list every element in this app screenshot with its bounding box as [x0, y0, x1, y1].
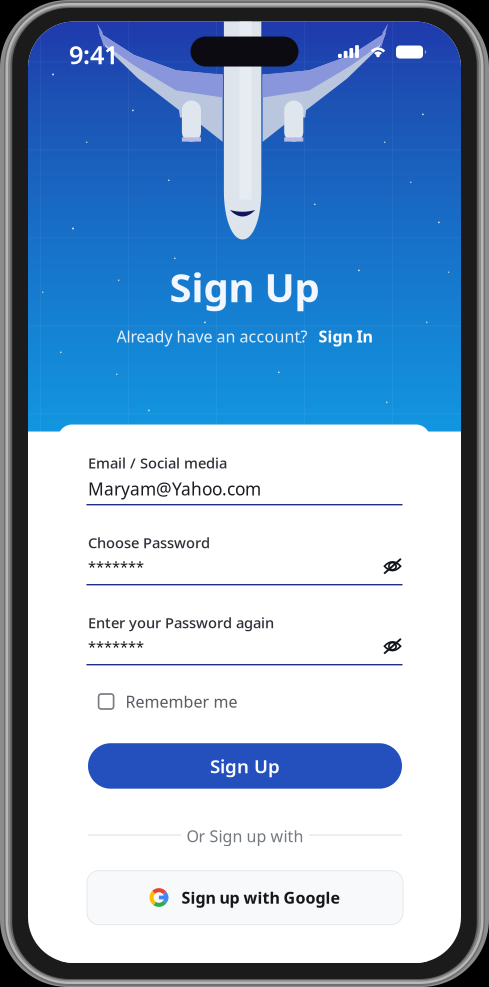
- staticText: Sign up with Google: [181, 887, 340, 908]
- staticText: Already have an account?: [116, 326, 307, 347]
- staticText: Choose Password: [88, 533, 210, 552]
- button[interactable]: Show password: [378, 632, 406, 660]
- staticText: *******: [88, 637, 144, 656]
- staticText: Sign In: [318, 326, 372, 347]
- staticText: Sign Up: [210, 754, 280, 778]
- staticText: Or Sign up with: [186, 825, 303, 847]
- staticText: Email / Social media: [88, 453, 227, 472]
- button[interactable]: Sign Up: [88, 743, 402, 789]
- staticText: Remember me: [126, 691, 238, 712]
- staticText: Maryam@Yahoo.com: [88, 477, 261, 500]
- staticText: Enter your Password again: [88, 613, 274, 632]
- button[interactable]: Show password: [378, 552, 406, 580]
- button[interactable]: Sign up with Google: [87, 871, 403, 925]
- staticText: Sign Up: [169, 260, 319, 313]
- staticText: *******: [88, 557, 144, 576]
- button[interactable]: Remember me: [99, 689, 238, 713]
- button[interactable]: Sign In: [318, 326, 372, 347]
- staticText: 9:41: [69, 37, 118, 71]
